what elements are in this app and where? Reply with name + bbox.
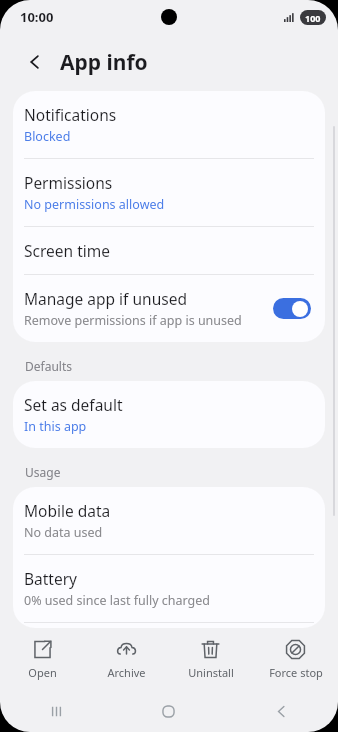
staticText: 0% used since last fully charged — [24, 592, 211, 609]
button[interactable]: Battery — [13, 555, 325, 622]
staticText: Usage — [25, 464, 61, 480]
staticText: In this app — [24, 418, 87, 435]
staticText: No data used — [24, 524, 103, 541]
staticText: Remove permissions if app is unused — [24, 312, 242, 329]
button[interactable]: Archive — [84, 628, 168, 690]
button[interactable]: Open — [0, 628, 84, 690]
staticText: Uninstall — [188, 665, 234, 680]
staticText: Defaults — [25, 358, 72, 374]
staticText: No permissions allowed — [24, 196, 165, 213]
button[interactable]: Set as default — [13, 381, 325, 448]
staticText: Battery — [24, 568, 78, 589]
staticText: Notifications — [24, 104, 117, 125]
button[interactable]: Mobile data — [13, 487, 325, 554]
button[interactable]: Manage app if unused — [13, 275, 325, 342]
staticText: App info — [60, 48, 148, 77]
button[interactable]: Force stop — [253, 628, 338, 690]
button[interactable]: Recent apps — [0, 690, 112, 732]
button[interactable]: Notifications — [13, 91, 325, 158]
staticText: Manage app if unused — [24, 288, 187, 309]
staticText: Mobile data — [24, 500, 111, 521]
button[interactable]: Uninstall — [168, 628, 253, 690]
staticText: Blocked — [24, 128, 71, 145]
staticText: Force stop — [269, 665, 323, 680]
button[interactable]: Permissions — [13, 159, 325, 226]
button[interactable]: Screen time — [13, 227, 325, 274]
staticText: 100 — [305, 12, 321, 24]
staticText: Open — [28, 665, 57, 680]
button[interactable]: Back — [225, 690, 338, 732]
staticText: Archive — [107, 665, 146, 680]
staticText: Set as default — [24, 394, 123, 415]
button[interactable]: Storage — [13, 623, 325, 628]
staticText: Permissions — [24, 172, 113, 193]
button[interactable]: Home — [112, 690, 225, 732]
staticText: Screen time — [24, 240, 110, 261]
staticText: 10:00 — [20, 8, 54, 26]
button[interactable]: Back — [18, 45, 52, 79]
